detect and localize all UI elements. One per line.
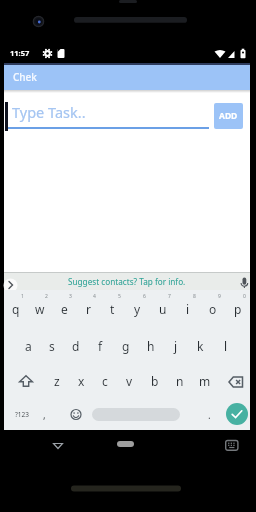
button[interactable] bbox=[117, 441, 134, 447]
button[interactable]: q bbox=[4, 290, 28, 328]
button[interactable]: c bbox=[93, 364, 117, 398]
staticText: . bbox=[208, 408, 211, 422]
staticText: 2 bbox=[45, 293, 48, 300]
staticText: 0 bbox=[243, 293, 246, 300]
staticText: 11:57 bbox=[10, 48, 30, 58]
staticText: n bbox=[176, 373, 184, 389]
staticText: e bbox=[61, 301, 68, 317]
button[interactable]: s bbox=[40, 328, 64, 364]
button[interactable]: d bbox=[64, 328, 88, 364]
staticText: r bbox=[86, 301, 91, 317]
button[interactable]: l bbox=[213, 328, 238, 364]
button[interactable]: z bbox=[45, 364, 69, 398]
button[interactable]: p bbox=[225, 290, 250, 328]
staticText: g bbox=[122, 338, 130, 354]
staticText: h bbox=[147, 338, 155, 354]
staticText: 7 bbox=[168, 293, 171, 300]
button[interactable]: w bbox=[28, 290, 52, 328]
button[interactable]: a bbox=[16, 328, 40, 364]
button[interactable] bbox=[4, 364, 45, 398]
button[interactable]: x bbox=[69, 364, 93, 398]
button[interactable]: ADD bbox=[214, 103, 243, 129]
staticText: 9 bbox=[218, 293, 221, 300]
button[interactable]: v bbox=[117, 364, 142, 398]
button[interactable]: e bbox=[52, 290, 76, 328]
button[interactable] bbox=[50, 436, 66, 452]
staticText: 1 bbox=[21, 293, 24, 300]
button[interactable]: g bbox=[113, 328, 138, 364]
staticText: q bbox=[12, 301, 20, 317]
button[interactable]: n bbox=[167, 364, 192, 398]
button[interactable]: u bbox=[150, 290, 175, 328]
staticText: k bbox=[197, 338, 204, 354]
button[interactable]: j bbox=[163, 328, 188, 364]
staticText: s bbox=[49, 338, 55, 354]
button[interactable]: . bbox=[199, 399, 219, 430]
staticText: j bbox=[174, 338, 178, 354]
button[interactable]: k bbox=[188, 328, 213, 364]
button[interactable]: t bbox=[100, 290, 125, 328]
button[interactable]: i bbox=[175, 290, 200, 328]
staticText: Type Task.. bbox=[12, 102, 86, 122]
staticText: z bbox=[54, 373, 60, 389]
button[interactable]: o bbox=[200, 290, 225, 328]
staticText: Suggest contacts? Tap for info. bbox=[68, 276, 186, 287]
button[interactable] bbox=[92, 408, 180, 421]
button[interactable]: m bbox=[192, 364, 217, 398]
staticText: ADD bbox=[219, 110, 238, 122]
staticText: i bbox=[186, 301, 190, 317]
staticText: b bbox=[151, 373, 159, 389]
button[interactable]: r bbox=[76, 290, 100, 328]
staticText: w bbox=[35, 301, 45, 317]
staticText: Chek bbox=[13, 70, 37, 84]
staticText: x bbox=[78, 373, 85, 389]
button[interactable] bbox=[217, 364, 250, 398]
staticText: l bbox=[224, 338, 228, 354]
button[interactable]: y bbox=[125, 290, 150, 328]
button[interactable] bbox=[66, 399, 86, 430]
staticText: , bbox=[43, 408, 46, 422]
staticText: v bbox=[126, 373, 133, 389]
button[interactable]: , bbox=[34, 399, 54, 430]
button[interactable] bbox=[225, 439, 239, 452]
button[interactable]: b bbox=[142, 364, 167, 398]
staticText: m bbox=[199, 373, 211, 389]
staticText: f bbox=[98, 338, 103, 354]
staticText: d bbox=[72, 338, 80, 354]
button[interactable]: h bbox=[138, 328, 163, 364]
staticText: ?123 bbox=[15, 410, 29, 419]
staticText: a bbox=[25, 338, 32, 354]
staticText: 8 bbox=[193, 293, 196, 300]
staticText: 4 bbox=[93, 293, 96, 300]
button[interactable] bbox=[226, 403, 248, 425]
staticText: o bbox=[209, 301, 217, 317]
button[interactable]: ?123 bbox=[8, 399, 36, 430]
button[interactable]: f bbox=[88, 328, 113, 364]
staticText: u bbox=[159, 301, 167, 317]
staticText: 6 bbox=[143, 293, 146, 300]
staticText: y bbox=[134, 301, 141, 317]
staticText: t bbox=[110, 301, 115, 317]
staticText: p bbox=[234, 301, 242, 317]
staticText: c bbox=[102, 373, 108, 389]
staticText: 5 bbox=[118, 293, 121, 300]
staticText: 3 bbox=[69, 293, 72, 300]
